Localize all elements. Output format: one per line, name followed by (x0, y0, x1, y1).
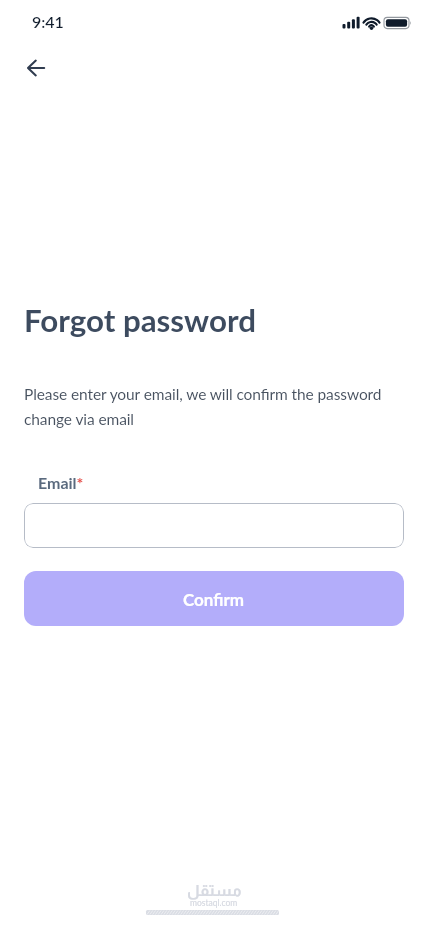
button[interactable]: Confirm (24, 571, 404, 626)
staticText: Confirm (183, 589, 245, 609)
staticText: mostaql.com (190, 898, 238, 908)
button[interactable] (24, 503, 404, 548)
staticText: مستقل (187, 882, 242, 899)
staticText: Email* (38, 473, 84, 492)
staticText: Forgot password (24, 301, 256, 339)
staticText: 9:41 (32, 12, 64, 31)
staticText: Please enter your email, we will confirm… (24, 385, 382, 428)
button[interactable] (16, 48, 56, 88)
